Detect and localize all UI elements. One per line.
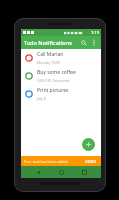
staticText: Buy some coffee	[37, 69, 76, 76]
staticText: Monday 10:00	[37, 60, 61, 65]
staticText: 3:00 P.M. Tomorrow	[37, 78, 70, 83]
staticText: Print pictures	[37, 87, 69, 94]
button[interactable]: Print pictures	[21, 85, 101, 103]
staticText: Call Marian	[37, 51, 64, 58]
button[interactable]: Back	[32, 166, 44, 178]
staticText: UNDO	[85, 159, 97, 164]
button[interactable]: Search	[78, 37, 89, 48]
staticText: July 8	[37, 96, 46, 101]
button[interactable]: More options	[89, 38, 98, 47]
button[interactable]: UNDO	[84, 159, 98, 164]
button[interactable]: Buy some coffee	[21, 67, 101, 85]
button[interactable]: Add task	[82, 138, 95, 151]
staticText: Todo Notifications	[24, 39, 78, 46]
staticText: 7:19	[91, 30, 99, 35]
button[interactable]: Call Marian	[21, 49, 101, 67]
button[interactable]: Home	[55, 166, 67, 178]
button[interactable]: Your task has been added	[21, 156, 101, 166]
button[interactable]: Recent apps	[78, 166, 90, 178]
staticText: Your task has been added	[24, 159, 84, 164]
